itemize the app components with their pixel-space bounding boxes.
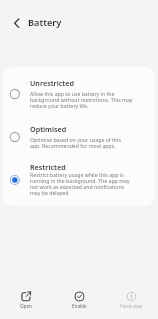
staticText: Battery [28,17,62,28]
button[interactable]: Open [4,287,48,315]
staticText: Allow this app to use battery in the bac… [30,91,133,109]
staticText: Restrict battery usage while this app is… [30,172,130,196]
button[interactable]: Force stop [109,287,153,315]
button[interactable]: Unrestricted [3,67,155,113]
button[interactable]: Restricted [3,155,155,206]
staticText: Optimised [30,126,67,134]
staticText: Unrestricted [30,80,74,88]
button[interactable] [6,12,26,34]
staticText: Open [20,304,32,309]
button[interactable]: Optimised [3,113,155,155]
staticText: Force stop [120,304,143,309]
staticText: Enable [72,304,87,309]
button[interactable]: Enable [57,287,101,315]
staticText: Restricted [30,164,66,172]
staticText: Optimise based on your usage of this app… [30,137,121,149]
